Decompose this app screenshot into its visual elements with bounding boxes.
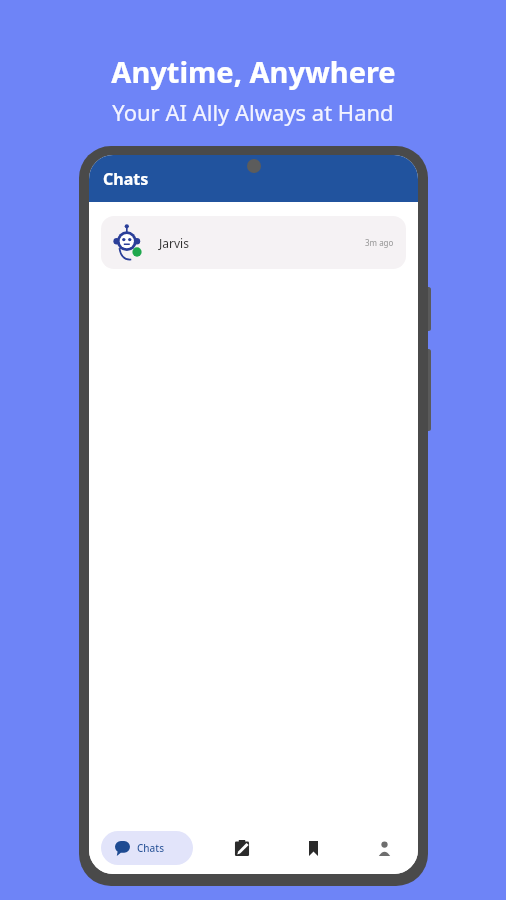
button[interactable]: Profile [362, 826, 406, 870]
button[interactable]: Saved [291, 826, 335, 870]
staticText: Chats [103, 168, 149, 190]
staticText: Your AI Ally Always at Hand [112, 97, 394, 127]
button[interactable]: Chats [101, 831, 193, 865]
staticText: 3m ago [365, 237, 394, 248]
staticText: Jarvis [159, 235, 189, 251]
staticText: Anytime, Anywhere [111, 52, 396, 91]
button[interactable]: Jarvis [101, 216, 406, 269]
button[interactable]: Notes [220, 826, 264, 870]
staticText: Chats [137, 841, 165, 855]
